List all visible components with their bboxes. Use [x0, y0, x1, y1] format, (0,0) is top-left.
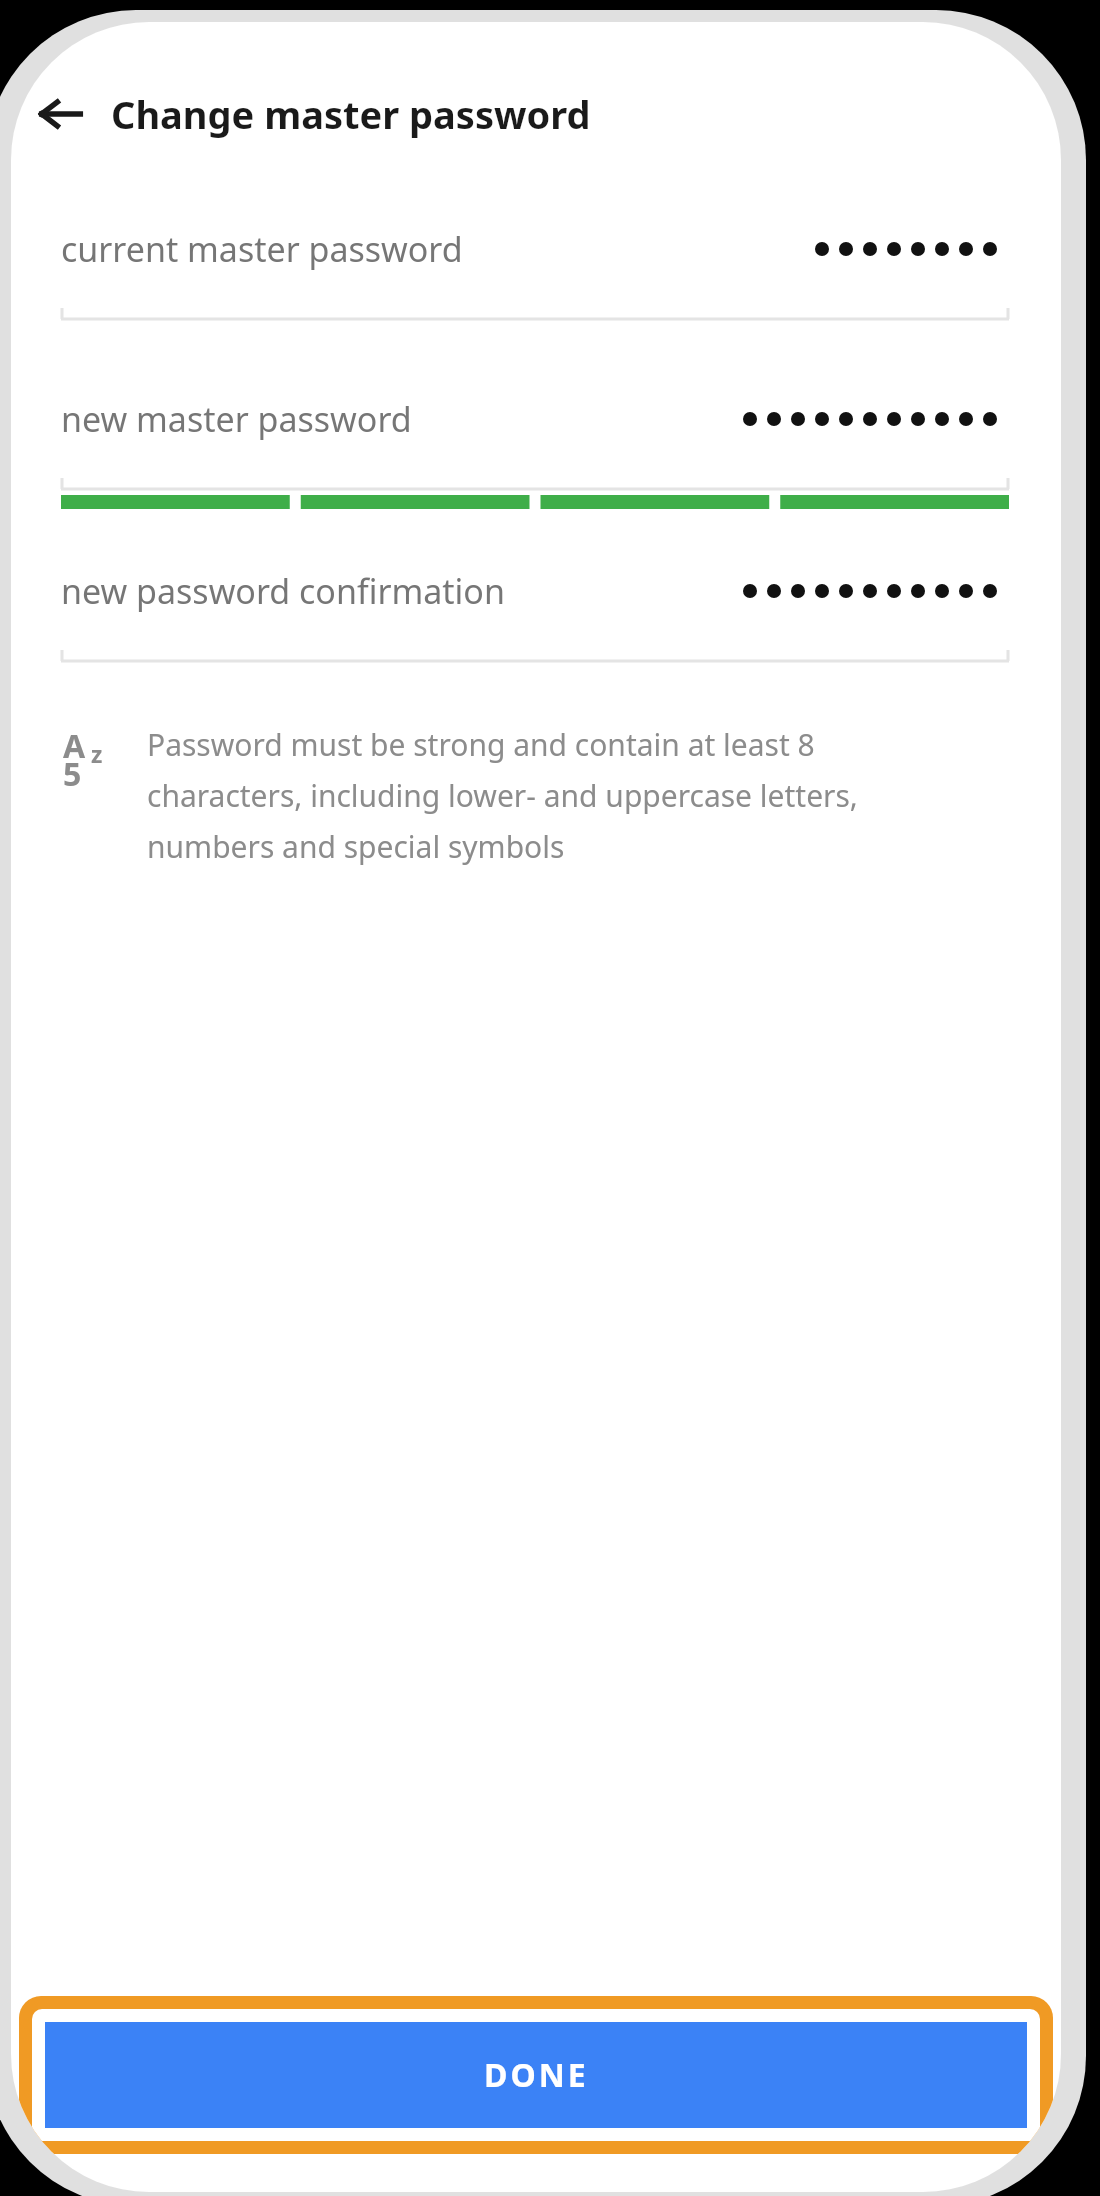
staticText: numbers and special symbols: [147, 826, 565, 867]
button[interactable]: Back: [25, 78, 97, 150]
staticText: 5: [63, 752, 82, 796]
staticText: Password must be strong and contain at l…: [147, 724, 815, 765]
button[interactable]: new password confirmation: [11, 562, 1061, 666]
staticText: Change master password: [111, 88, 591, 140]
staticText: DONE: [484, 2053, 589, 2097]
staticText: z: [91, 738, 103, 769]
button[interactable]: DONE: [45, 2022, 1027, 2128]
staticText: current master password: [61, 226, 463, 272]
button[interactable]: new master password: [11, 390, 1061, 494]
staticText: A: [63, 724, 86, 768]
staticText: new master password: [61, 396, 412, 442]
staticText: characters, including lower- and upperca…: [147, 775, 858, 816]
button[interactable]: current master password: [11, 220, 1061, 324]
staticText: new password confirmation: [61, 568, 505, 614]
